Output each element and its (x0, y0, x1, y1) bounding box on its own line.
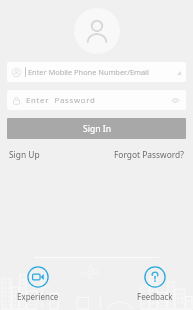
button[interactable]: Experience (0, 264, 75, 304)
staticText: Sign Up (9, 149, 40, 160)
staticText: Sign In (83, 123, 111, 135)
staticText: Feedback (137, 291, 173, 302)
button[interactable]: Enter Mobile Phone Number/Email (7, 62, 186, 82)
button[interactable]: Enter Password (7, 90, 186, 110)
button[interactable]: Show password (169, 94, 181, 106)
button[interactable]: Feedback (117, 264, 193, 304)
staticText: Experience (17, 291, 59, 302)
staticText: Enter Mobile Phone Number/Email (28, 67, 175, 77)
button[interactable]: Sign Up (9, 147, 40, 162)
staticText: Forgot Password? (114, 149, 184, 160)
button[interactable]: Sign In (7, 118, 186, 139)
staticText: Enter Password (26, 95, 169, 106)
button[interactable]: Forgot Password? (114, 147, 184, 162)
button[interactable]: Profile avatar (74, 8, 120, 54)
